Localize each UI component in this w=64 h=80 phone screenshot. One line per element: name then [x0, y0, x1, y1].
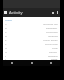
staticText: Commute — [46, 30, 58, 33]
button[interactable]: F — [3, 41, 60, 45]
staticText: G — [5, 46, 7, 49]
staticText: Breakfast — [46, 26, 58, 29]
staticText: E — [5, 38, 7, 41]
staticText: Lunch break — [43, 38, 58, 41]
button[interactable]: Menu — [3, 8, 60, 17]
staticText: C — [5, 30, 7, 33]
staticText: F — [5, 42, 7, 45]
button[interactable]: G — [3, 45, 60, 49]
button[interactable]: J — [3, 57, 60, 60]
staticText: Reading — [48, 54, 58, 57]
staticText: D — [5, 34, 7, 37]
staticText: Meeting — [48, 34, 58, 37]
staticText: Morning run — [43, 22, 58, 25]
staticText: Dinner — [49, 50, 58, 53]
staticText: Sleep — [51, 57, 58, 60]
staticText: J — [5, 57, 6, 60]
staticText: H — [5, 50, 7, 53]
staticText: Today — [5, 18, 12, 21]
staticText: Walk — [52, 46, 58, 49]
staticText: A — [5, 22, 7, 25]
staticText: I — [5, 54, 6, 57]
button[interactable]: H — [3, 49, 60, 53]
button[interactable]: C — [3, 29, 60, 33]
button[interactable]: D — [3, 33, 60, 37]
button[interactable]: B — [3, 25, 60, 29]
button[interactable]: A — [3, 21, 60, 25]
button[interactable]: I — [3, 53, 60, 57]
staticText: Activity — [9, 10, 23, 15]
staticText: Focus time — [45, 42, 58, 45]
button[interactable]: E — [3, 37, 60, 41]
staticText: B — [5, 26, 7, 29]
